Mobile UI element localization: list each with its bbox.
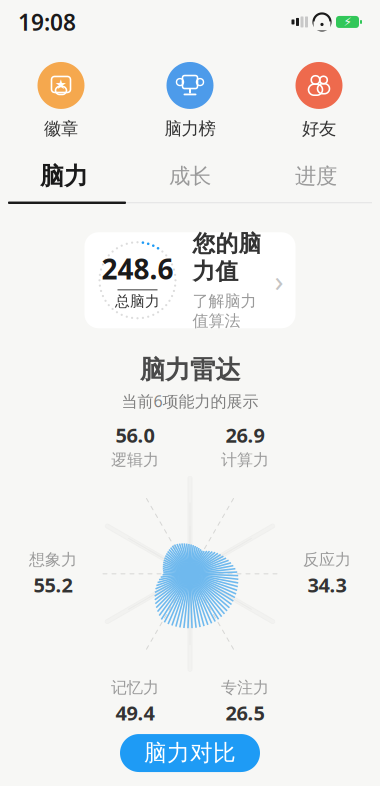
button[interactable]: 脑力对比: [120, 734, 260, 772]
staticText: 脑力雷达: [140, 354, 240, 385]
staticText: 脑力榜: [164, 118, 215, 139]
staticText: 49.4: [115, 699, 154, 726]
button[interactable]: ★: [16, 62, 106, 139]
staticText: 好友: [302, 118, 336, 139]
button[interactable]: 进度: [253, 159, 379, 193]
button[interactable]: 脑力: [1, 159, 127, 193]
staticText: 徽章: [44, 118, 78, 139]
staticText: ›: [274, 261, 283, 300]
staticText: 记忆力: [111, 678, 159, 697]
staticText: ★: [55, 77, 67, 92]
staticText: 19:08: [18, 7, 76, 37]
button[interactable]: 248.6: [84, 232, 295, 328]
staticText: 成长: [169, 163, 211, 189]
staticText: 想象力: [29, 550, 77, 569]
staticText: 34.3: [307, 571, 346, 598]
button[interactable]: 成长: [127, 159, 253, 193]
staticText: 了解脑力值算法: [192, 291, 256, 331]
staticText: 逻辑力: [111, 450, 159, 470]
staticText: ⚡︎: [343, 15, 351, 29]
staticText: 反应力: [303, 550, 351, 569]
staticText: 总脑力: [115, 292, 160, 310]
staticText: 脑力对比: [144, 739, 236, 767]
button[interactable]: 脑力榜: [145, 62, 235, 139]
staticText: 56.0: [115, 422, 154, 448]
staticText: 计算力: [221, 450, 269, 470]
staticText: 进度: [295, 163, 337, 189]
button[interactable]: 好友: [274, 62, 364, 139]
staticText: 55.2: [33, 571, 72, 598]
staticText: 脑力: [40, 161, 88, 191]
staticText: 当前6项能力的展示: [121, 390, 258, 412]
staticText: 专注力: [221, 678, 269, 697]
staticText: 26.5: [225, 699, 264, 726]
staticText: 26.9: [225, 422, 264, 448]
staticText: 248.6: [101, 250, 173, 287]
staticText: 您的脑力值: [192, 230, 261, 285]
